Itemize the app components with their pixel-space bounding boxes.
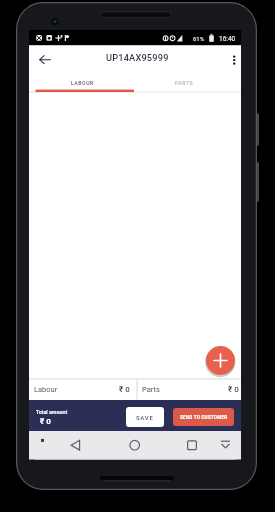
staticText: SAVE [136, 414, 154, 421]
button[interactable]: SEND TO CUSTOMER [173, 408, 234, 426]
staticText: Total amount [36, 409, 68, 415]
button[interactable]: PARTS [131, 73, 237, 93]
button[interactable]: SAVE [126, 407, 164, 427]
button[interactable] [226, 49, 243, 68]
button[interactable] [33, 50, 53, 70]
staticText: SEND TO CUSTOMER [180, 415, 228, 420]
staticText: ₹ 0 [228, 385, 239, 394]
staticText: UP14AX95999 [106, 52, 169, 63]
staticText: Labour [34, 385, 58, 394]
staticText: PARTS [175, 80, 194, 86]
staticText: ₹ 0 [119, 385, 130, 394]
button[interactable] [64, 434, 88, 457]
button[interactable] [123, 434, 147, 457]
staticText: 61% [193, 35, 205, 42]
staticText: Parts [142, 385, 160, 394]
button[interactable] [214, 434, 238, 457]
staticText: ₹ 0 [40, 417, 51, 426]
staticText: 16:40 [219, 35, 236, 43]
button[interactable] [206, 346, 235, 375]
button[interactable]: LABOUR [29, 73, 135, 93]
button[interactable] [180, 434, 204, 457]
staticText: LABOUR [71, 80, 94, 86]
